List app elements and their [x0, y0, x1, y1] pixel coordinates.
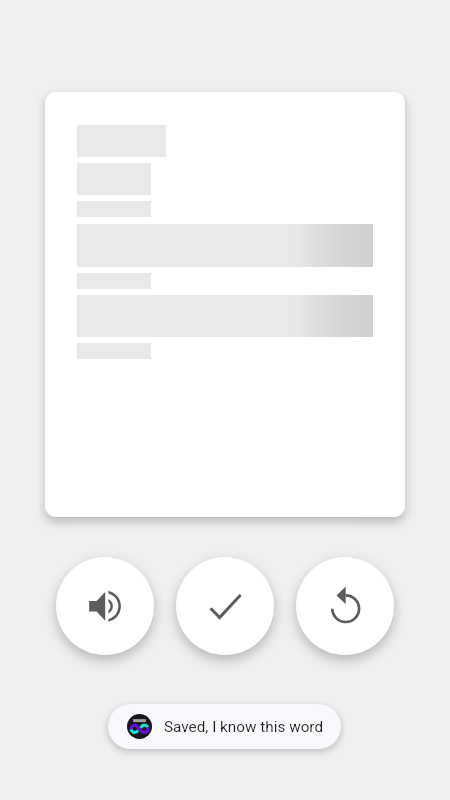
button[interactable]: Play pronunciation	[56, 557, 154, 655]
button[interactable]: Saved, I know this word	[108, 704, 341, 749]
button[interactable]: I know this word	[176, 557, 274, 655]
button[interactable]: Replay	[296, 557, 394, 655]
staticText: Saved, I know this word	[164, 718, 324, 736]
button[interactable]: Flash card, loading	[45, 92, 405, 517]
